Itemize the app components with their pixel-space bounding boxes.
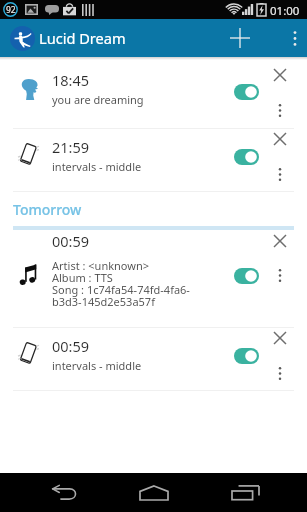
button[interactable]: Recent apps	[221, 473, 269, 512]
button[interactable]: More options	[277, 269, 283, 282]
staticText: intervals - middle	[52, 159, 142, 174]
button[interactable]: 21:59	[0, 129, 307, 191]
button[interactable]: 00:59	[0, 328, 307, 390]
staticText: Artist : <unknown> Album : TTS Song : 1c…	[52, 258, 190, 309]
button[interactable]: More options	[283, 19, 307, 57]
staticText: 00:59	[52, 231, 90, 251]
staticText: Tomorrow	[13, 200, 82, 219]
staticText: 92	[6, 4, 16, 16]
button[interactable]: Toggle alarm	[234, 84, 259, 100]
button[interactable]: Delete alarm	[274, 235, 286, 247]
button[interactable]: Delete alarm	[274, 133, 286, 145]
staticText: 18:45	[52, 70, 90, 90]
button[interactable]: 00:59	[0, 230, 307, 327]
button[interactable]: Delete alarm	[274, 332, 286, 344]
button[interactable]: 18:45	[0, 57, 307, 128]
button[interactable]: Add alarm	[228, 19, 252, 57]
staticText: 00:59	[52, 336, 90, 356]
button[interactable]: Delete alarm	[274, 69, 286, 81]
button[interactable]: More options	[277, 168, 283, 181]
staticText: intervals - middle	[52, 358, 142, 373]
button[interactable]: More options	[277, 104, 283, 117]
staticText: Lucid Dream	[39, 28, 126, 48]
staticText: 01:00	[270, 3, 300, 19]
button[interactable]: Home	[130, 473, 178, 512]
button[interactable]: Toggle alarm	[234, 348, 259, 364]
button[interactable]: More options	[277, 367, 283, 380]
staticText: you are dreaming	[52, 92, 144, 107]
button[interactable]: Toggle alarm	[234, 268, 259, 284]
staticText: 21:59	[52, 137, 90, 157]
button[interactable]: Back	[40, 473, 88, 512]
button[interactable]: Toggle alarm	[234, 149, 259, 165]
